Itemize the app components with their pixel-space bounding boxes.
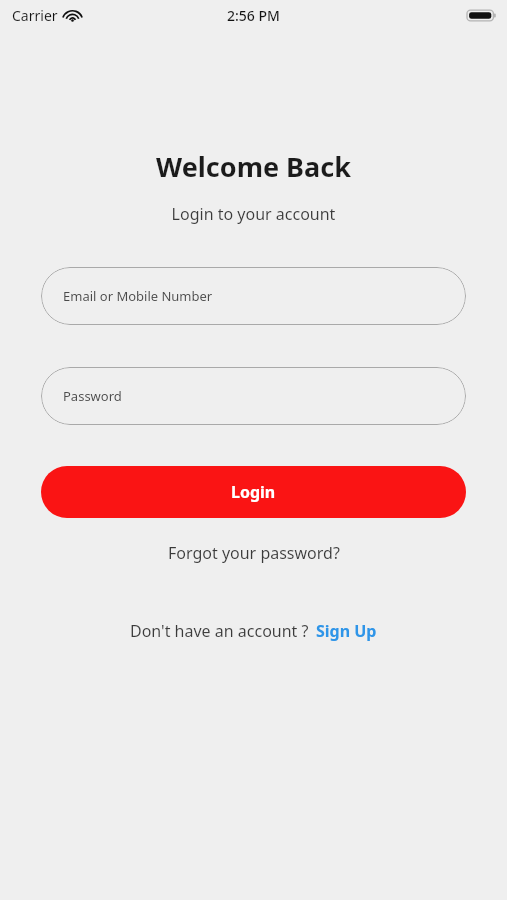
staticText: Login to your account	[0, 203, 507, 225]
button[interactable]: Password	[41, 367, 466, 425]
staticText: Password	[63, 387, 122, 405]
button[interactable]: Sign Up	[316, 620, 377, 642]
button[interactable]: Login	[41, 466, 466, 518]
staticText: Email or Mobile Number	[63, 287, 213, 305]
staticText: Sign Up	[316, 620, 377, 642]
button[interactable]: Forgot your password?	[160, 538, 348, 568]
staticText: Carrier	[12, 6, 58, 25]
staticText: Login	[231, 481, 276, 503]
button[interactable]: Email or Mobile Number	[41, 267, 466, 325]
staticText: Welcome Back	[0, 148, 507, 185]
staticText: Don't have an account ?	[130, 620, 309, 642]
staticText: Forgot your password?	[168, 542, 340, 564]
staticText: 2:56 PM	[227, 6, 280, 25]
